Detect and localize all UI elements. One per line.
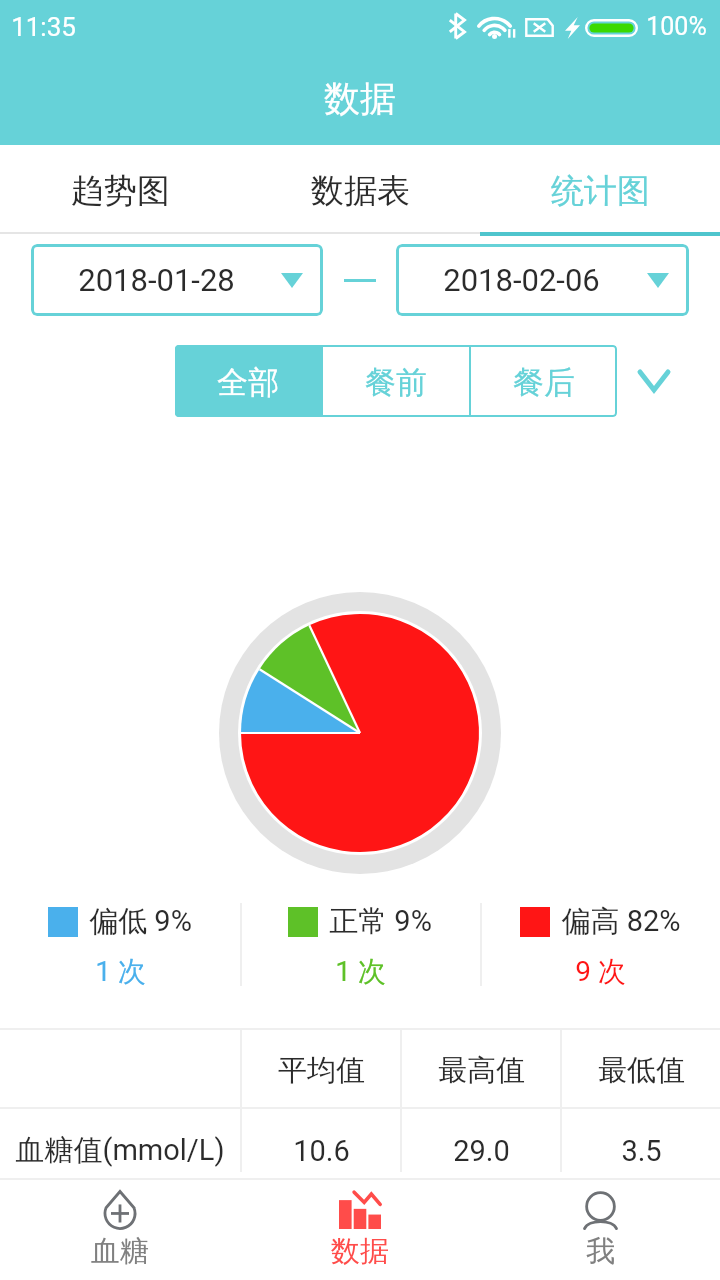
staticText: 数据	[331, 1233, 389, 1270]
staticText: 100%	[646, 12, 707, 41]
staticText: 10.6	[293, 1134, 350, 1168]
staticText: 偏低 9%	[89, 903, 192, 940]
button[interactable]: 数据	[240, 1180, 480, 1280]
button[interactable]: 2018-02-06	[396, 244, 689, 316]
staticText: 血糖值(mmol/L)	[15, 1132, 225, 1169]
button[interactable]: 血糖	[0, 1180, 240, 1280]
staticText: 我	[586, 1233, 615, 1270]
staticText: 最低值	[598, 1052, 685, 1089]
button[interactable]: 偏高 82%	[480, 894, 720, 986]
staticText: 29.0	[453, 1134, 510, 1168]
staticText: 全部	[217, 363, 279, 402]
staticText: 血糖	[91, 1233, 149, 1270]
staticText: 餐后	[513, 363, 575, 402]
staticText: 正常 9%	[329, 903, 432, 940]
button[interactable]: 趋势图	[0, 145, 240, 236]
button[interactable]: 餐后	[471, 345, 617, 417]
staticText: 2018-01-28	[78, 262, 235, 298]
button[interactable]: 统计图	[480, 145, 720, 236]
staticText: 趋势图	[71, 170, 170, 212]
button[interactable]: 餐前	[323, 345, 469, 417]
button[interactable]: Expand filters	[617, 345, 690, 417]
staticText: 数据表	[311, 170, 410, 212]
staticText: 统计图	[551, 170, 650, 212]
staticText: 偏高 82%	[561, 903, 681, 940]
button[interactable]: 2018-01-28	[31, 244, 323, 316]
button[interactable]: 我	[480, 1180, 720, 1280]
button[interactable]: 偏低 9%	[0, 894, 240, 986]
staticText: 9 次	[575, 954, 626, 986]
staticText: 3.5	[621, 1134, 662, 1168]
staticText: 2018-02-06	[443, 262, 600, 298]
button[interactable]: 全部	[175, 345, 321, 417]
staticText: 平均值	[278, 1052, 365, 1089]
staticText: 最高值	[438, 1052, 525, 1089]
staticText: 11:35	[11, 12, 76, 42]
button[interactable]: 数据表	[240, 145, 480, 236]
button[interactable]: 正常 9%	[240, 894, 480, 986]
staticText: 1 次	[95, 954, 146, 986]
staticText: 餐前	[365, 363, 427, 402]
staticText: 数据	[324, 76, 396, 121]
staticText: 1 次	[335, 954, 386, 986]
